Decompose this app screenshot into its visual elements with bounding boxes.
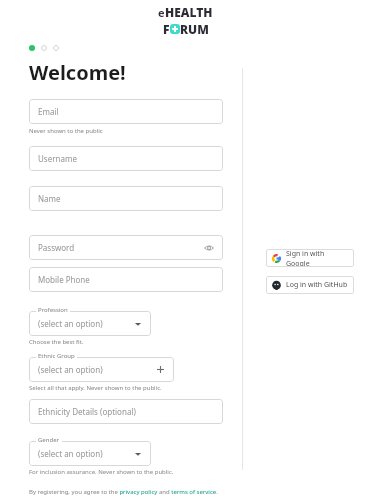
button[interactable] [29, 311, 151, 336]
staticText: Sign in with Google [286, 249, 348, 267]
staticText: Choose the best fit. [29, 338, 84, 346]
staticText: Never shown to the public [29, 127, 103, 135]
staticText: F [163, 21, 170, 37]
button[interactable]: Sign in with Google [266, 249, 354, 267]
other: Show password [204, 243, 214, 253]
other: Open menu [134, 450, 142, 458]
button[interactable] [29, 441, 151, 466]
button[interactable]: Name [29, 186, 223, 211]
staticText: HEALTH [165, 4, 213, 20]
staticText: RUM [180, 21, 209, 37]
button[interactable]: Mobile Phone [29, 267, 223, 292]
other: Open menu [134, 320, 142, 328]
staticText: Ethnic Group [38, 352, 75, 360]
staticText: Username [38, 153, 214, 164]
other: Add [156, 365, 165, 374]
staticText: For inclusion assurance. Never shown to … [29, 468, 174, 476]
staticText: Log in with GitHub [286, 280, 348, 290]
button[interactable]: Username [29, 146, 223, 171]
button[interactable]: Password [29, 235, 223, 260]
staticText: e [158, 5, 165, 20]
button[interactable]: Email [29, 99, 223, 124]
staticText: Select all that apply. Never shown to th… [29, 384, 162, 392]
button[interactable]: Log in with GitHub [266, 276, 354, 294]
staticText: Profession [38, 306, 68, 314]
staticText: Name [38, 193, 214, 204]
button[interactable]: Ethnicity Details (optional) [29, 399, 223, 424]
staticText: Email [38, 106, 214, 117]
staticText: Password [38, 242, 204, 253]
staticText: (select an option) [38, 448, 134, 459]
staticText: (select an option) [38, 318, 134, 329]
staticText: By registering, you agree to the privacy… [29, 488, 218, 496]
staticText: Mobile Phone [38, 274, 214, 285]
staticText: Ethnicity Details (optional) [38, 406, 214, 417]
staticText: Gender [38, 436, 60, 444]
staticText: Welcome! [29, 59, 126, 86]
staticText: (select an option) [38, 364, 156, 375]
button[interactable] [29, 357, 174, 382]
